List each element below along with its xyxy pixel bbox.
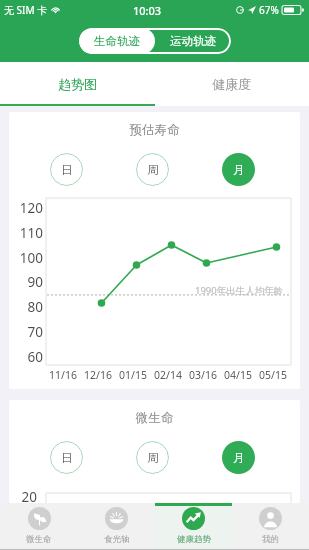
button[interactable]: 趋势图 — [0, 62, 154, 106]
staticText: 100 — [9, 249, 43, 267]
staticText: 67% — [259, 3, 279, 17]
staticText: 11/16 — [49, 368, 77, 382]
button[interactable]: 健康趋势 — [155, 503, 232, 549]
staticText: 日 — [61, 163, 73, 177]
button[interactable]: 生命轨迹 — [79, 28, 155, 54]
button[interactable]: 周 — [136, 153, 169, 186]
button[interactable]: 食光轴 — [78, 503, 155, 549]
staticText: 我的 — [262, 534, 279, 545]
staticText: 01/15 — [119, 368, 147, 382]
staticText: 03/16 — [189, 368, 217, 382]
staticText: 04/15 — [224, 368, 252, 382]
staticText: 健康趋势 — [177, 534, 211, 545]
button[interactable]: 日 — [50, 153, 83, 186]
staticText: 食光轴 — [104, 534, 130, 545]
staticText: 预估寿命 — [9, 122, 300, 138]
staticText: 周 — [147, 163, 159, 177]
button[interactable]: 运动轨迹 — [155, 28, 231, 54]
button[interactable]: 月 — [222, 441, 255, 474]
button[interactable]: 周 — [136, 441, 169, 474]
staticText: 12/16 — [84, 368, 112, 382]
staticText: 微生命 — [26, 534, 52, 545]
staticText: 120 — [9, 199, 43, 217]
staticText: 05/15 — [259, 368, 287, 382]
staticText: 1990年出生人均年龄 — [195, 284, 284, 297]
staticText: 02/14 — [154, 368, 182, 382]
staticText: 70 — [9, 323, 43, 341]
staticText: 20 — [9, 488, 37, 503]
staticText: 日 — [61, 451, 73, 465]
staticText: 周 — [147, 451, 159, 465]
staticText: 运动轨迹 — [170, 34, 216, 48]
button[interactable]: 日 — [50, 441, 83, 474]
staticText: 110 — [9, 224, 43, 242]
staticText: 微生命 — [9, 410, 300, 426]
button[interactable]: 月 — [222, 153, 255, 186]
staticText: 80 — [9, 298, 43, 316]
staticText: 月 — [233, 451, 245, 465]
staticText: 无 SIM 卡 — [4, 3, 48, 17]
button[interactable]: 健康度 — [154, 62, 309, 106]
staticText: 90 — [9, 273, 43, 291]
staticText: 趋势图 — [58, 76, 97, 92]
staticText: 10:03 — [133, 3, 162, 18]
button[interactable]: 微生命 — [0, 503, 78, 549]
staticText: 60 — [9, 348, 43, 366]
staticText: 生命轨迹 — [94, 34, 140, 48]
staticText: 月 — [233, 163, 245, 177]
button[interactable]: 我的 — [232, 503, 309, 549]
staticText: 健康度 — [212, 76, 251, 92]
